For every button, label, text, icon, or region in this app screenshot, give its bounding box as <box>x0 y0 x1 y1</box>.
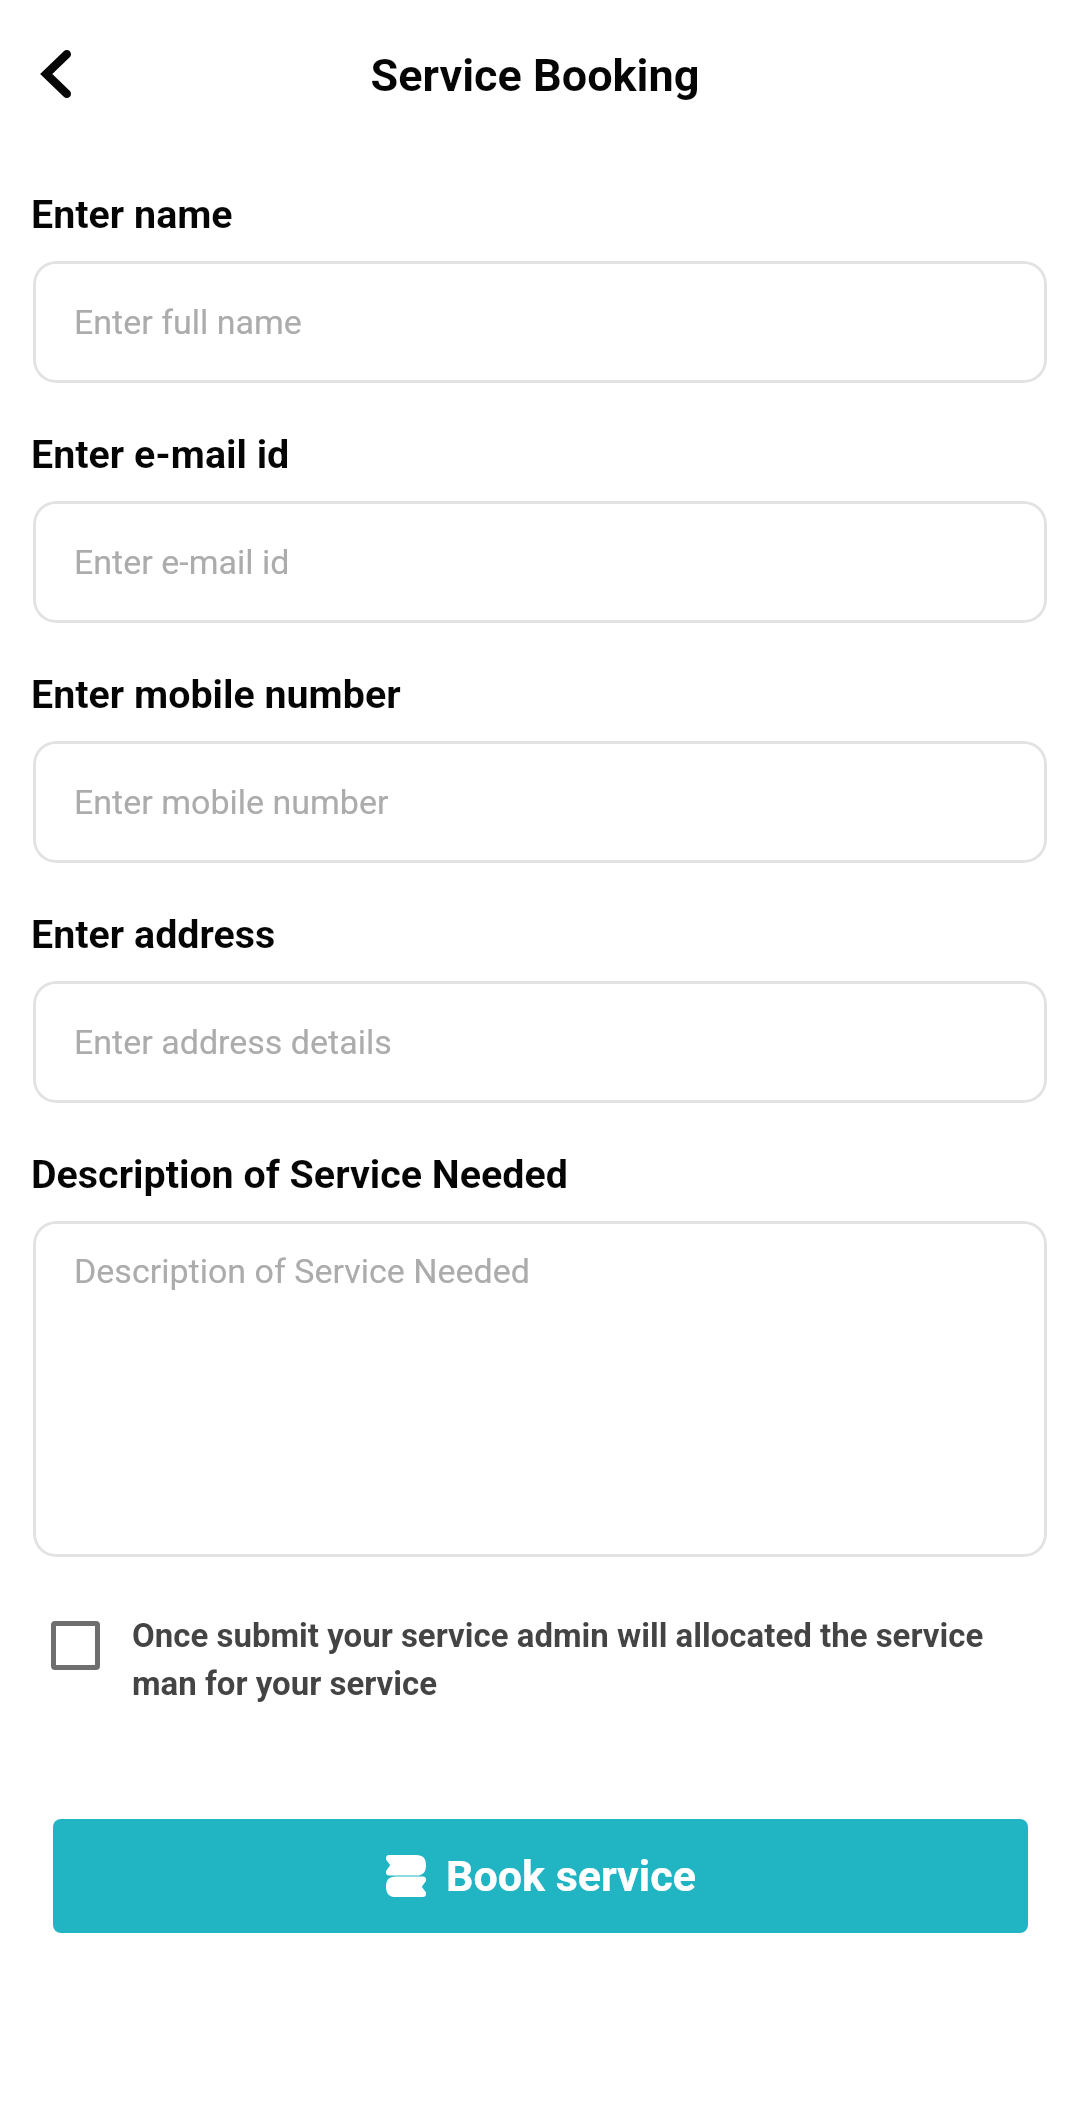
staticText: Enter name <box>31 191 233 237</box>
staticText: Enter e-mail id <box>31 431 290 477</box>
staticText: Enter address details <box>74 1022 392 1062</box>
button[interactable]: Description of Service Needed <box>33 1221 1047 1557</box>
button[interactable]: Enter e-mail id <box>33 501 1047 623</box>
staticText: Enter full name <box>74 302 302 342</box>
staticText: Enter mobile number <box>74 782 389 822</box>
staticText: Enter mobile number <box>31 671 401 717</box>
staticText: Book service <box>446 1851 696 1901</box>
staticText: Description of Service Needed <box>74 1251 530 1291</box>
staticText: Once submit your service admin will allo… <box>132 1616 1047 1703</box>
button[interactable]: Back <box>12 29 101 118</box>
button[interactable]: Once submit your service admin will allo… <box>33 1606 1047 1693</box>
staticText: Enter e-mail id <box>74 542 290 582</box>
button[interactable]: Book service <box>53 1819 1028 1933</box>
staticText: Enter address <box>31 911 276 957</box>
staticText: Description of Service Needed <box>31 1151 568 1197</box>
button[interactable]: Enter address details <box>33 981 1047 1103</box>
staticText: Service Booking <box>0 49 1075 102</box>
button[interactable]: Enter full name <box>33 261 1047 383</box>
button[interactable]: Enter mobile number <box>33 741 1047 863</box>
